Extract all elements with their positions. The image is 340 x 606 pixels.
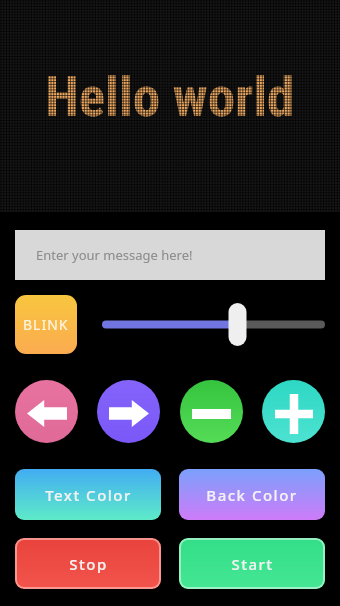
button[interactable]: Back Color [179, 469, 325, 520]
staticText: BLINK [23, 315, 69, 334]
button[interactable]: Speed [95, 300, 335, 350]
button[interactable]: Text Color [15, 469, 161, 520]
staticText: Start [231, 554, 274, 574]
button[interactable]: Increase [262, 380, 325, 443]
staticText: Stop [69, 554, 108, 574]
staticText: Hello world [45, 65, 295, 129]
button[interactable]: Enter your message here! [15, 230, 325, 280]
button[interactable]: BLINK [15, 295, 77, 354]
button[interactable]: Previous [15, 380, 78, 443]
button[interactable]: Decrease [180, 380, 243, 443]
button[interactable]: Stop [15, 538, 161, 589]
staticText: Text Color [45, 485, 132, 505]
button[interactable]: Next [97, 380, 160, 443]
staticText: Enter your message here! [36, 246, 193, 264]
staticText: Back Color [206, 485, 298, 505]
button[interactable]: Start [179, 538, 325, 589]
